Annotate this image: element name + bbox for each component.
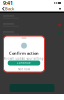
staticText: Confirm action	[9, 51, 39, 56]
button[interactable]: More	[57, 6, 62, 11]
staticText: Back	[5, 6, 14, 11]
button[interactable]: Continue	[8, 60, 40, 65]
staticText: Continue	[17, 61, 31, 65]
button[interactable]: Back	[1, 6, 15, 11]
staticText: This will update your settings	[3, 57, 44, 60]
staticText: Not now	[18, 67, 30, 71]
staticText: 9:41	[3, 0, 13, 7]
button[interactable]: Not now	[18, 67, 30, 71]
